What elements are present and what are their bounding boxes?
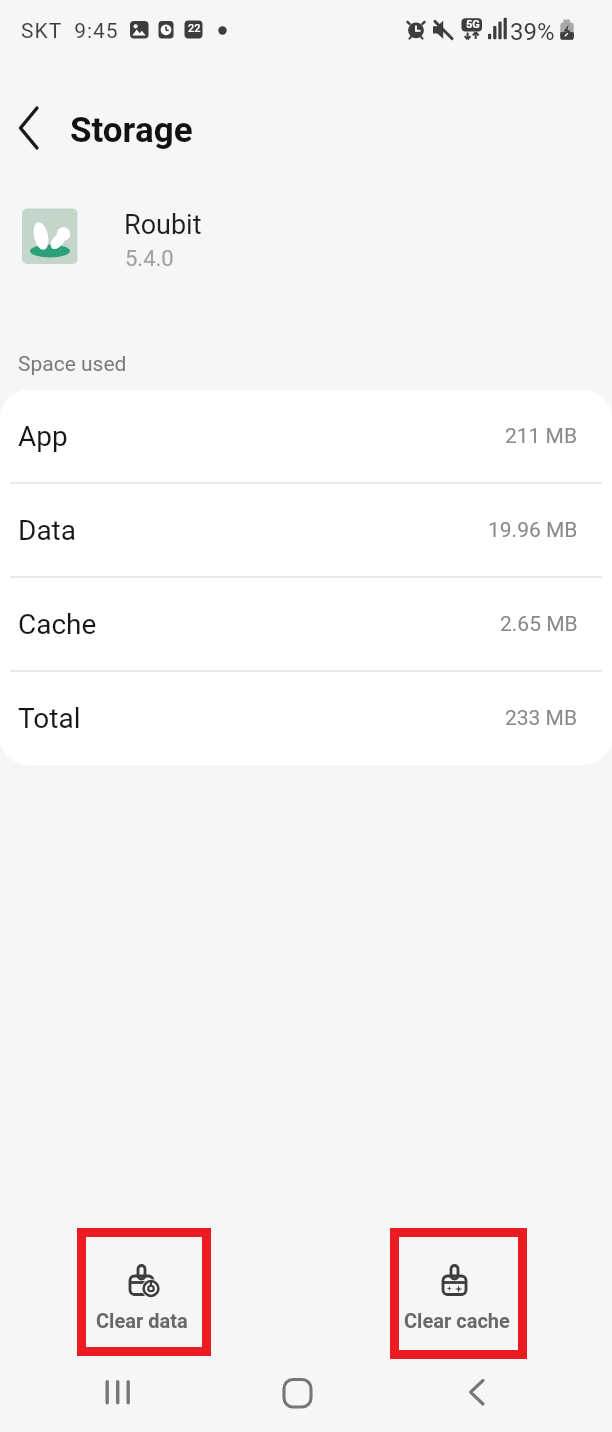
staticText: Storage <box>70 110 193 151</box>
staticText: 39% <box>510 18 555 46</box>
staticText: 22 <box>188 22 201 35</box>
staticText: App <box>18 420 68 453</box>
staticText: 2.65 MB <box>500 612 578 637</box>
button[interactable] <box>453 1368 501 1416</box>
button[interactable] <box>390 1228 527 1359</box>
staticText: Clear cache <box>404 1309 510 1332</box>
staticText: 233 MB <box>505 706 578 731</box>
staticText: SKT 9:45 <box>21 19 119 44</box>
button[interactable]: Data <box>0 484 612 576</box>
staticText: 211 MB <box>505 424 578 449</box>
button[interactable]: Cache <box>0 578 612 670</box>
staticText: Data <box>18 514 76 547</box>
staticText: 19.96 MB <box>488 518 578 543</box>
staticText: Cache <box>18 608 97 641</box>
staticText: Clear data <box>96 1309 188 1332</box>
button[interactable] <box>77 1228 211 1356</box>
button[interactable]: Total <box>0 672 612 764</box>
staticText: 5.4.0 <box>125 246 174 272</box>
staticText: Space used <box>18 352 127 377</box>
staticText: 5G <box>466 18 480 31</box>
button[interactable] <box>93 1368 141 1416</box>
button[interactable]: App <box>0 390 612 482</box>
button[interactable] <box>8 102 58 154</box>
staticText: Total <box>18 702 81 735</box>
button[interactable] <box>273 1368 321 1416</box>
staticText: Roubit <box>124 209 202 241</box>
